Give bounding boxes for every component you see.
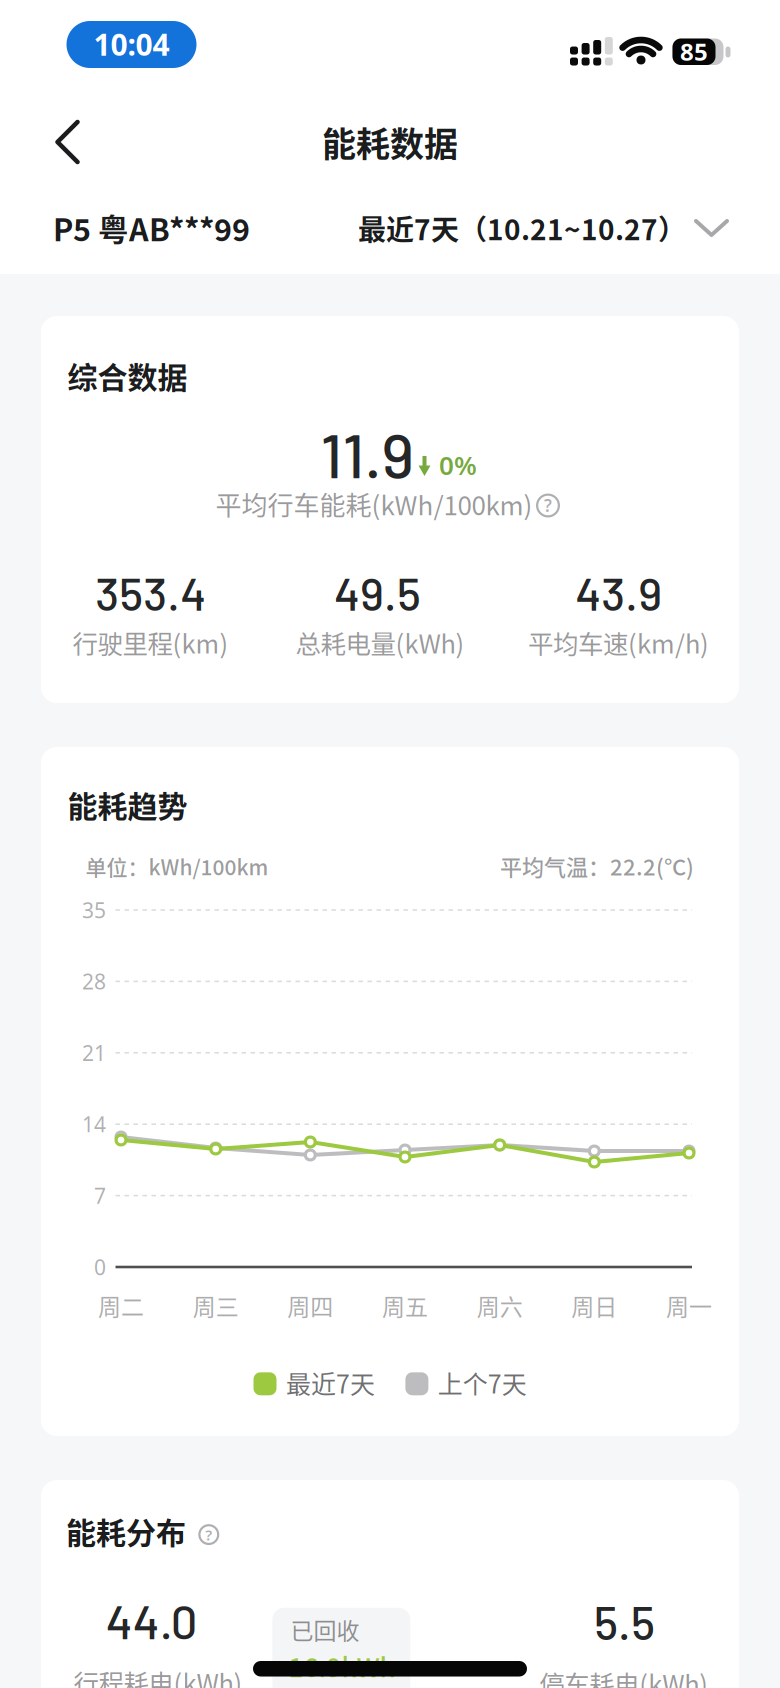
staticText: 行驶里程(km)	[73, 624, 229, 661]
staticText: 行程耗电(kWh)	[73, 1663, 242, 1688]
button[interactable]: 返回	[51, 117, 95, 167]
button[interactable]: P5 粤AB***99	[53, 206, 250, 250]
staticText: 28	[82, 967, 106, 996]
staticText: 综合数据	[68, 354, 188, 397]
staticText: 16.9kWh	[288, 1647, 395, 1685]
staticText: 353.4	[95, 565, 206, 620]
staticText: 周六	[477, 1289, 523, 1322]
staticText: 周二	[98, 1289, 144, 1322]
staticText: 35	[82, 896, 106, 924]
staticText: 停车耗电(kWh)	[539, 1664, 708, 1688]
staticText: 44.0	[106, 1592, 198, 1649]
staticText: 0	[94, 1253, 106, 1281]
staticText: 平均行车能耗(kWh/100km)	[215, 485, 532, 523]
staticText: 49.5	[334, 565, 421, 620]
staticText: ?	[544, 494, 552, 517]
staticText: 周三	[193, 1289, 239, 1322]
staticText: 最近7天（10.21~10.27）	[358, 208, 686, 248]
button[interactable]: 帮助	[198, 1524, 219, 1545]
staticText: 最近7天	[286, 1364, 375, 1401]
staticText: 85	[680, 35, 708, 68]
staticText: 11.9	[321, 416, 415, 491]
button[interactable]: 最近7天（10.21~10.27）	[358, 208, 729, 248]
staticText: 已回收	[290, 1613, 359, 1646]
staticText: 21	[82, 1038, 106, 1067]
staticText: 上个7天	[438, 1364, 527, 1401]
staticText: 总耗电量(kWh)	[295, 624, 464, 661]
staticText: 平均气温：22.2(°C)	[500, 850, 694, 882]
staticText: 周日	[571, 1289, 617, 1322]
staticText: P5 粤AB***99	[53, 206, 250, 250]
staticText: 14	[82, 1110, 106, 1138]
button[interactable]: 帮助	[536, 493, 560, 517]
staticText: 能耗趋势	[68, 783, 188, 826]
staticText: 7	[94, 1181, 106, 1210]
staticText: 10:04	[93, 24, 169, 64]
staticText: 能耗分布	[66, 1509, 186, 1553]
staticText: 43.9	[575, 565, 662, 620]
staticText: 周一	[666, 1289, 712, 1322]
staticText: 单位：kWh/100km	[85, 851, 268, 881]
staticText: ?	[205, 1524, 212, 1545]
staticText: 0%	[439, 447, 477, 483]
staticText: 能耗数据	[322, 117, 458, 167]
staticText: 平均车速(km/h)	[528, 624, 709, 661]
staticText: 周四	[287, 1289, 333, 1322]
staticText: 5.5	[594, 1594, 655, 1649]
staticText: 周五	[382, 1289, 428, 1322]
